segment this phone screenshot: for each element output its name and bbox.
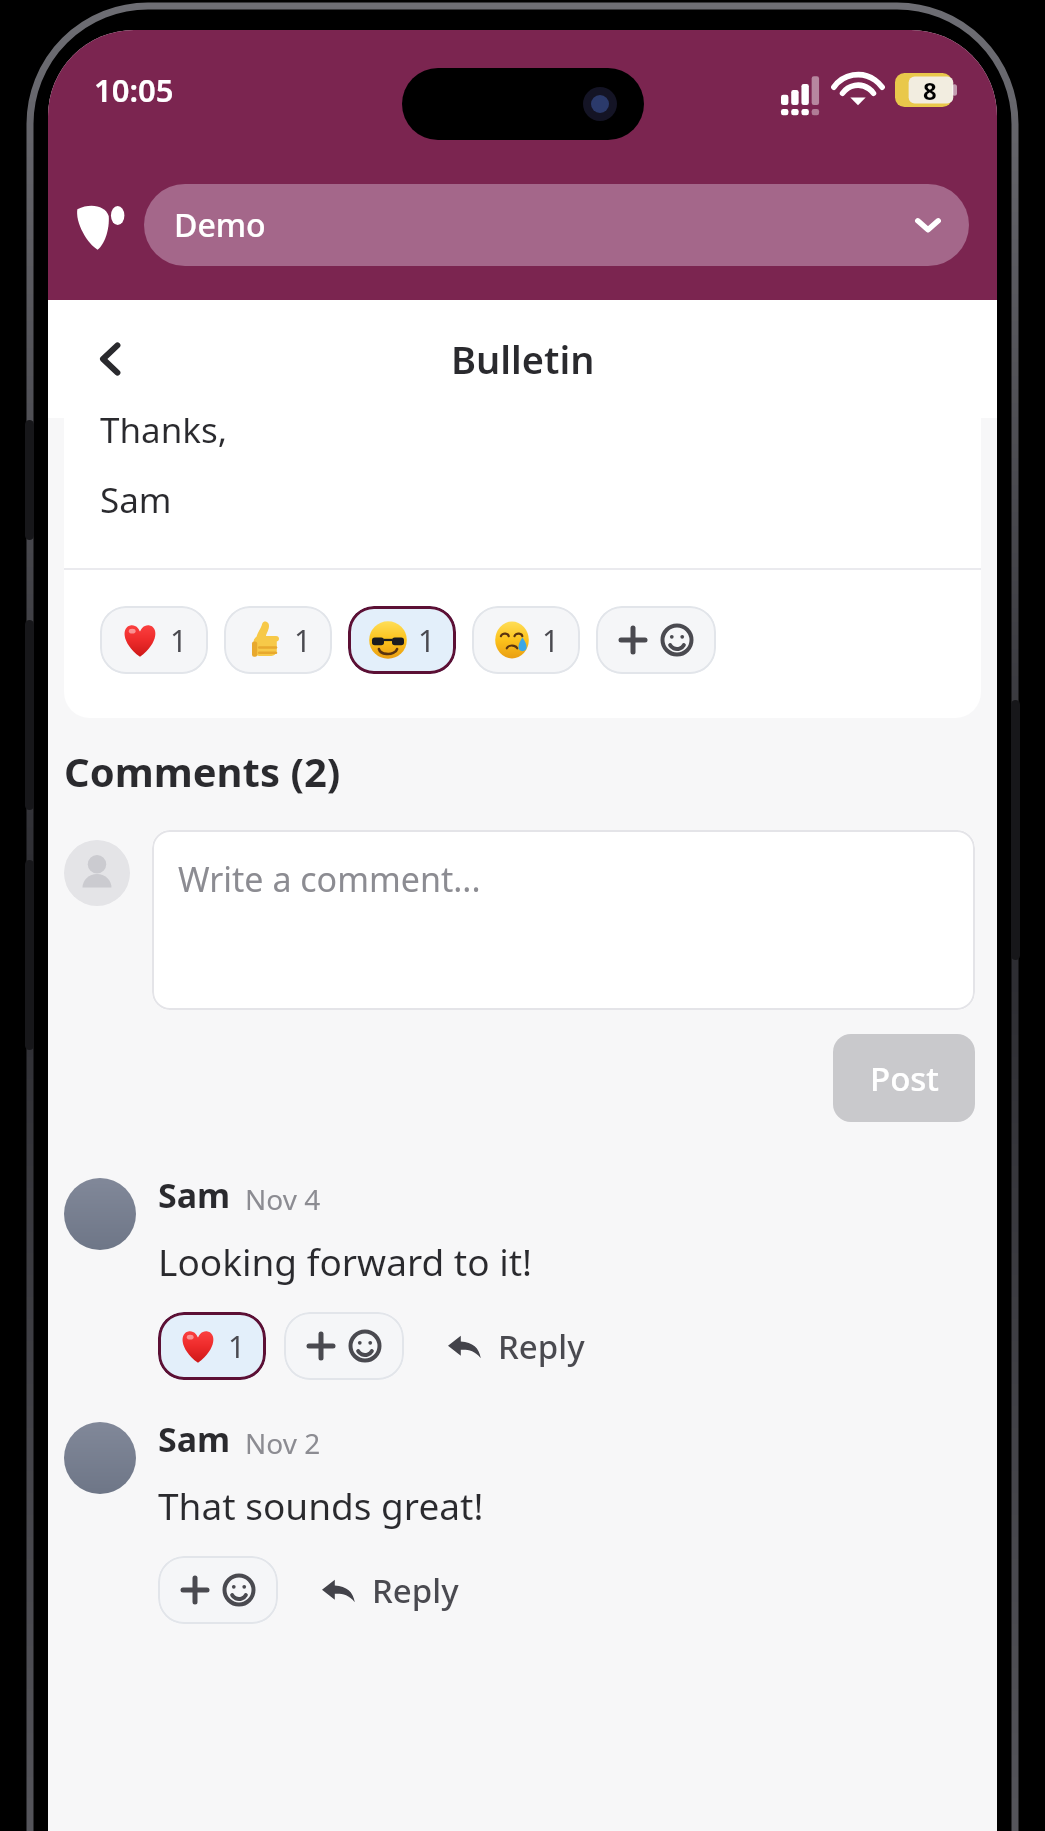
button[interactable]: Post <box>833 1034 975 1122</box>
staticText: Thanks, <box>100 418 228 454</box>
staticText: Looking forward to it! <box>158 1236 533 1286</box>
button[interactable]: 1 <box>224 606 332 674</box>
button[interactable]: Home <box>74 197 130 253</box>
button[interactable]: 1 <box>472 606 580 674</box>
button[interactable]: 1 <box>158 1312 266 1380</box>
button[interactable]: Write a comment... <box>152 830 975 1010</box>
staticText: 1 <box>294 620 312 661</box>
button[interactable]: Back <box>74 322 148 396</box>
staticText: That sounds great! <box>158 1480 484 1530</box>
staticText: Reply <box>372 1568 459 1613</box>
staticText: Post <box>870 1056 939 1101</box>
staticText: Bulletin <box>451 333 595 385</box>
staticText: Nov 4 <box>245 1180 321 1218</box>
staticText: Nov 2 <box>245 1424 321 1462</box>
staticText: 8 <box>923 74 937 107</box>
staticText: 1 <box>228 1326 246 1367</box>
staticText: Reply <box>498 1324 585 1369</box>
button[interactable]: 1 <box>348 606 456 674</box>
staticText: 10:05 <box>94 69 174 111</box>
button[interactable]: Add reaction <box>596 606 716 674</box>
button[interactable]: Add reaction <box>158 1556 278 1624</box>
staticText: Demo <box>174 203 266 247</box>
button[interactable] <box>64 1422 136 1494</box>
button[interactable] <box>64 1178 136 1250</box>
staticText: 1 <box>542 620 560 661</box>
button[interactable]: Reply <box>312 1562 465 1619</box>
button[interactable]: Add reaction <box>284 1312 404 1380</box>
staticText: Write a comment... <box>178 856 481 902</box>
staticText: Sam <box>158 1172 231 1218</box>
other: Battery <box>895 73 957 107</box>
button[interactable]: Reply <box>438 1318 591 1375</box>
staticText: Sam <box>158 1416 231 1462</box>
staticText: 1 <box>418 620 436 661</box>
staticText: 1 <box>170 620 188 661</box>
staticText: Comments (2) <box>64 744 341 798</box>
button[interactable]: Demo <box>144 184 969 266</box>
staticText: Sam <box>100 476 172 524</box>
button[interactable]: 1 <box>100 606 208 674</box>
